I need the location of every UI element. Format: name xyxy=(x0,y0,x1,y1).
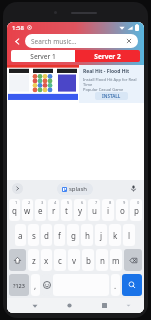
button[interactable]: c xyxy=(54,249,66,271)
button[interactable]: Server 1 xyxy=(11,50,75,62)
staticText: splash xyxy=(69,185,88,193)
staticText: 3 xyxy=(41,200,44,205)
staticText: 7 xyxy=(95,200,98,205)
staticText: z xyxy=(32,255,36,266)
staticText: Search music... xyxy=(31,37,77,46)
button[interactable]: t xyxy=(61,199,72,221)
button[interactable]: k xyxy=(109,224,121,246)
staticText: o xyxy=(120,205,125,216)
button[interactable]: n xyxy=(96,249,108,271)
button[interactable]: j xyxy=(95,224,107,246)
staticText: 2 xyxy=(28,200,31,205)
staticText: Install Flood Hit App for Real Time Popu… xyxy=(83,77,140,92)
staticText: j xyxy=(100,230,103,241)
staticText: h xyxy=(85,230,90,241)
staticText: Real Hit - Flood Hit xyxy=(83,68,130,75)
button[interactable]: . xyxy=(111,274,120,296)
button[interactable]: Back xyxy=(28,299,41,312)
button[interactable]: Home xyxy=(63,299,76,312)
staticText: b xyxy=(86,255,91,266)
button[interactable]: d xyxy=(41,224,52,246)
button[interactable]: s xyxy=(28,224,39,246)
button[interactable]: Shift xyxy=(9,249,26,271)
button[interactable]: l xyxy=(123,224,135,246)
button[interactable]: g xyxy=(67,224,79,246)
button[interactable]: q xyxy=(9,199,20,221)
staticText: 4 xyxy=(54,200,57,205)
button[interactable]: Back xyxy=(10,34,24,48)
button[interactable]: e xyxy=(35,199,46,221)
button[interactable]: o xyxy=(116,199,128,221)
button[interactable]: splash xyxy=(57,183,93,195)
button[interactable]: Backspace xyxy=(124,249,142,271)
button[interactable]: Recent apps xyxy=(98,299,111,312)
button[interactable]: Voice input xyxy=(128,183,139,194)
staticText: Server 2 xyxy=(94,52,121,61)
button[interactable]: p xyxy=(130,199,142,221)
staticText: 1 xyxy=(15,200,18,205)
staticText: c xyxy=(58,255,62,266)
staticText: g xyxy=(71,230,76,241)
staticText: u xyxy=(92,205,97,216)
button[interactable]: z xyxy=(28,249,39,271)
staticText: k xyxy=(113,230,118,241)
button[interactable]: v xyxy=(68,249,80,271)
staticText: i xyxy=(107,205,110,216)
button[interactable]: u xyxy=(88,199,100,221)
staticText: w xyxy=(24,205,31,216)
button[interactable]: Expand suggestions xyxy=(12,183,23,194)
button[interactable]: b xyxy=(82,249,94,271)
button[interactable]: y xyxy=(74,199,86,221)
button[interactable]: , xyxy=(31,274,40,296)
staticText: e xyxy=(38,205,43,216)
button[interactable]: h xyxy=(81,224,93,246)
button[interactable]: a xyxy=(15,224,26,246)
staticText: d xyxy=(44,230,49,241)
staticText: Server 1 xyxy=(30,52,56,61)
button[interactable]: Search music... xyxy=(25,34,138,48)
staticText: a xyxy=(18,230,23,241)
staticText: v xyxy=(72,255,77,266)
staticText: n xyxy=(100,255,105,266)
button[interactable]: m xyxy=(110,249,122,271)
staticText: 8 xyxy=(109,200,112,205)
button[interactable]: r xyxy=(48,199,59,221)
staticText: 0 xyxy=(137,200,140,205)
staticText: 5 xyxy=(67,200,70,205)
button[interactable]: ?123 xyxy=(9,274,29,296)
staticText: s xyxy=(32,230,36,241)
staticText: y xyxy=(78,205,83,216)
staticText: , xyxy=(34,280,37,291)
button[interactable]: f xyxy=(54,224,65,246)
staticText: m xyxy=(112,255,120,266)
staticText: l xyxy=(128,230,131,241)
button[interactable]: Server 2 xyxy=(75,50,140,62)
staticText: ?123 xyxy=(13,282,25,289)
staticText: p xyxy=(134,205,139,216)
staticText: x xyxy=(44,255,49,266)
staticText: t xyxy=(65,205,68,216)
staticText: r xyxy=(52,205,56,216)
button[interactable]: Hide keyboard xyxy=(123,300,134,311)
staticText: . xyxy=(114,280,117,291)
staticText: q xyxy=(12,205,17,216)
button[interactable]: Real Hit - Flood Hit xyxy=(7,65,144,103)
staticText: 9 xyxy=(123,200,126,205)
staticText: 1:58 xyxy=(12,24,24,32)
button[interactable]: i xyxy=(102,199,114,221)
staticText: f xyxy=(58,230,61,241)
button[interactable]: Search xyxy=(122,274,142,296)
staticText: 6 xyxy=(81,200,84,205)
button[interactable]: INSTALL xyxy=(95,92,128,100)
button[interactable]: x xyxy=(41,249,52,271)
button[interactable]: w xyxy=(22,199,33,221)
staticText: INSTALL xyxy=(102,93,121,99)
button[interactable]: Emoji xyxy=(42,274,51,296)
